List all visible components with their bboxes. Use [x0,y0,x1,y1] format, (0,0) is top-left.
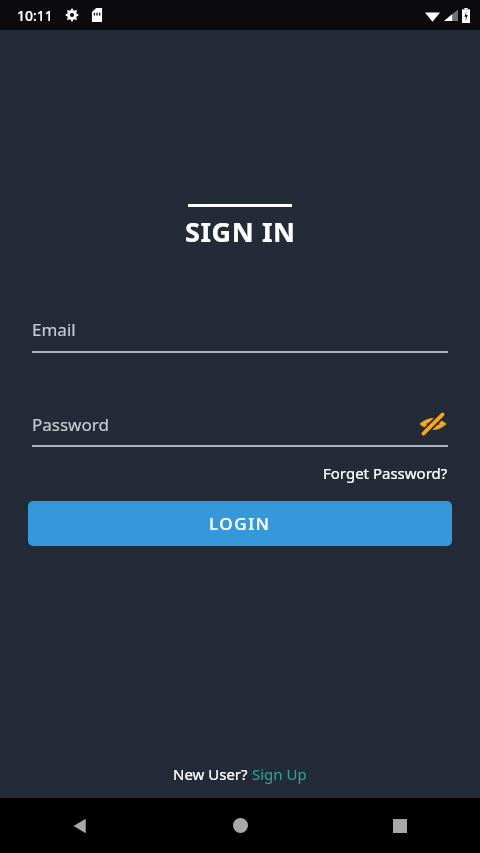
button[interactable]: Forget Password? [323,463,448,483]
button[interactable]: Home [160,798,320,853]
button[interactable]: LOGIN [28,501,452,546]
staticText: Sign Up [252,764,307,784]
staticText: Password [32,413,418,436]
staticText: Forget Password? [323,463,448,483]
staticText: Email [32,318,76,341]
staticText: New User? [173,764,252,784]
staticText: LOGIN [209,512,271,535]
button[interactable]: Recent apps [320,798,480,853]
staticText: 10:11 [17,6,53,25]
button[interactable]: Show password [418,409,448,439]
button[interactable]: Password [32,409,448,439]
staticText: SIGN IN [185,213,296,250]
button[interactable]: Email [32,318,448,353]
button[interactable]: Sign Up [252,764,307,784]
button[interactable]: Back [0,798,160,853]
